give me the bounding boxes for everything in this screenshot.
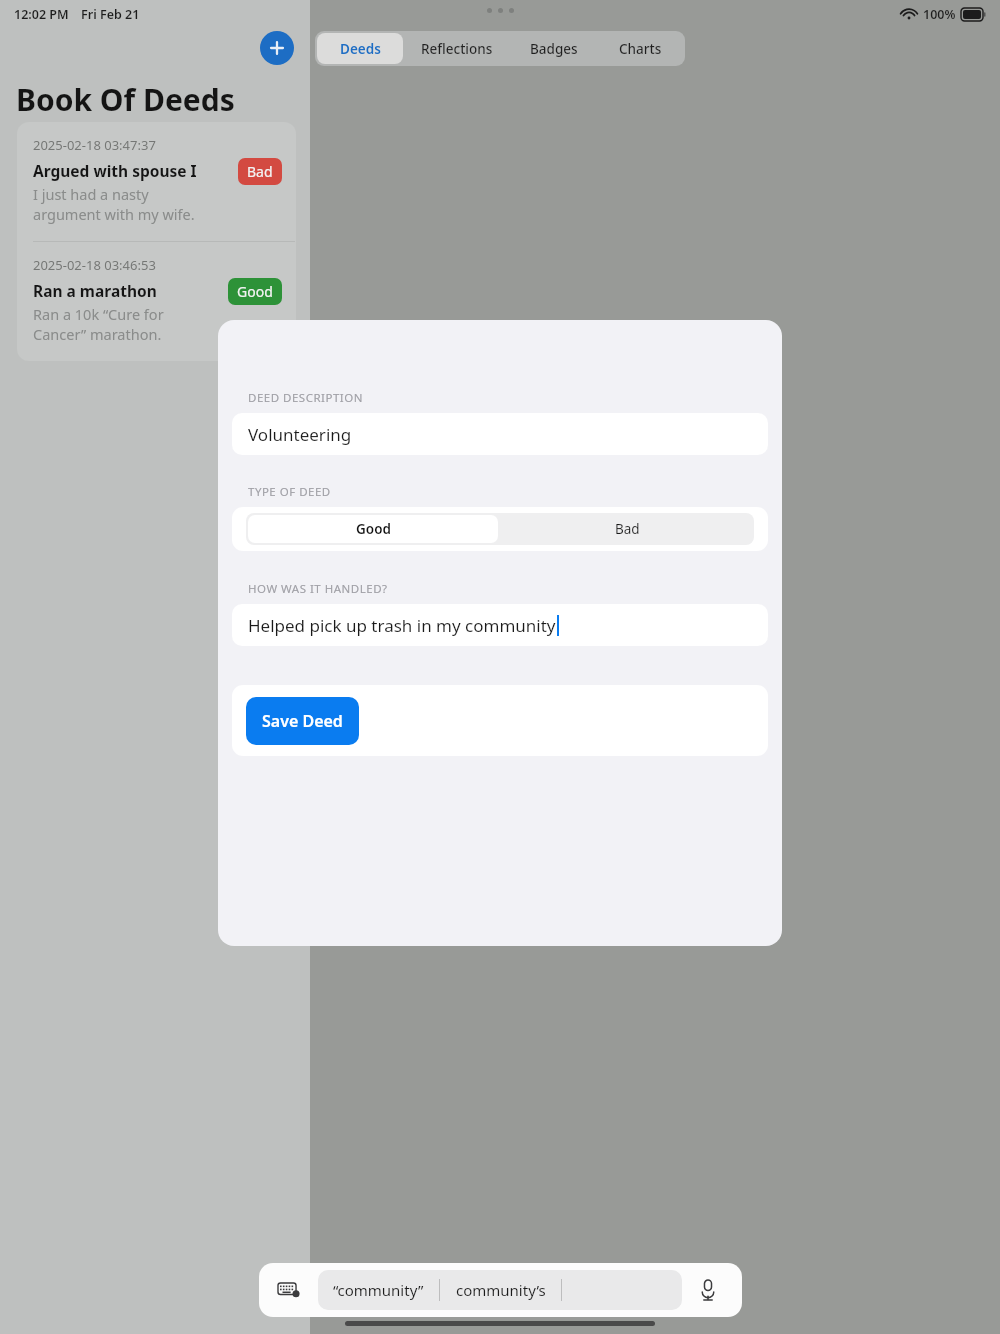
staticText: Good	[356, 520, 391, 538]
staticText: community’s	[456, 1280, 546, 1300]
button[interactable]: Bad	[500, 513, 754, 545]
button[interactable]: Reflections	[403, 33, 511, 64]
button[interactable]: Deeds	[317, 33, 403, 64]
staticText: 2025-02-18 03:46:53	[33, 256, 156, 274]
staticText: I just had a nasty argument with my wife…	[33, 184, 218, 225]
staticText: Book Of Deeds	[16, 79, 235, 120]
button[interactable]: Save Deed	[246, 697, 359, 745]
staticText: Argued with spouse I	[33, 160, 197, 181]
staticText: Bad	[615, 520, 640, 538]
staticText: Save Deed	[262, 710, 343, 732]
staticText: Bad	[247, 162, 273, 181]
button[interactable]: community’s	[440, 1280, 561, 1300]
button[interactable]: Charts	[597, 33, 683, 64]
staticText: DEED DESCRIPTION	[248, 390, 363, 406]
staticText: 2025-02-18 03:47:37	[33, 136, 156, 154]
staticText: Good	[237, 282, 273, 301]
button[interactable]: Good	[248, 515, 498, 543]
button[interactable]: Helped pick up trash in my community	[232, 604, 768, 646]
staticText: Volunteering	[248, 423, 352, 446]
staticText: Reflections	[421, 40, 493, 58]
staticText: Helped pick up trash in my community	[248, 614, 556, 637]
staticText: 12:02 PM	[14, 6, 69, 23]
staticText: Badges	[530, 40, 578, 58]
staticText: TYPE OF DEED	[248, 484, 331, 500]
button[interactable]: Add deed	[260, 31, 294, 65]
button[interactable]: Dictate	[694, 1276, 722, 1304]
staticText: Ran a marathon	[33, 280, 157, 301]
button[interactable]: Volunteering	[232, 413, 768, 455]
button[interactable]: Badges	[511, 33, 597, 64]
staticText: Deeds	[340, 40, 381, 58]
button[interactable]: Keyboard settings	[276, 1277, 302, 1303]
button[interactable]: “community”	[318, 1280, 439, 1300]
staticText: Fri Feb 21	[81, 6, 140, 23]
button[interactable]: 2025-02-18 03:47:37	[17, 122, 296, 241]
button[interactable]: 2025-02-18 03:46:53	[17, 242, 296, 361]
staticText: Ran a 10k “Cure for Cancer” marathon.	[33, 304, 218, 345]
staticText: “community”	[333, 1280, 424, 1300]
staticText: 100%	[923, 6, 956, 23]
staticText: HOW WAS IT HANDLED?	[248, 581, 388, 597]
staticText: Charts	[619, 40, 662, 58]
